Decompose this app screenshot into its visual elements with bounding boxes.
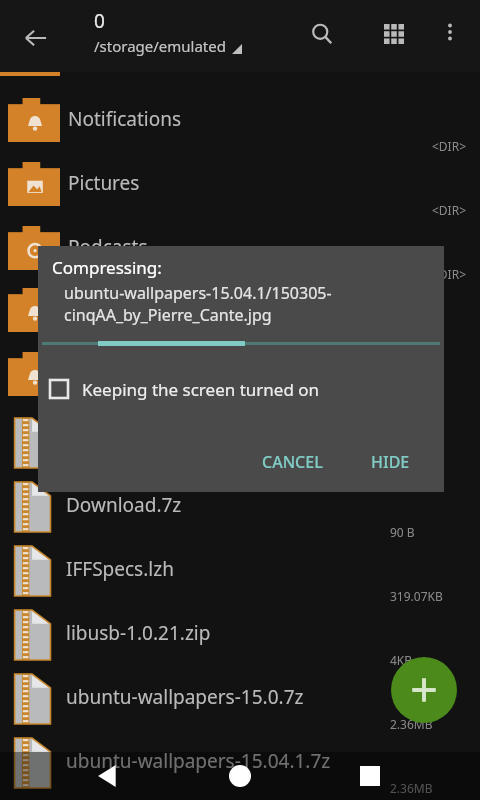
button[interactable]: Search xyxy=(298,10,346,58)
staticText: ubuntu-wallpapers-15.0.7z xyxy=(66,684,304,710)
staticText: Compressing: xyxy=(52,256,162,279)
button[interactable]: Add xyxy=(391,657,457,723)
button[interactable] xyxy=(8,352,60,396)
button[interactable]: Pictures xyxy=(0,160,480,224)
staticText: /storage/emulated xyxy=(94,36,226,56)
staticText: 319.07KB xyxy=(390,588,470,604)
staticText: IFFSpecs.lzh xyxy=(66,556,174,582)
staticText: CANCEL xyxy=(262,451,323,473)
button[interactable]: Home xyxy=(210,752,270,800)
staticText: 0 xyxy=(94,8,105,34)
staticText: Keeping the screen turned on xyxy=(82,378,320,401)
staticText: Podcasts xyxy=(68,234,148,260)
staticText: HIDE xyxy=(371,451,410,473)
button[interactable]: More options xyxy=(428,10,472,54)
button[interactable]: IFFSpecs.lzh xyxy=(0,544,480,608)
button[interactable]: Back xyxy=(12,14,60,62)
button[interactable]: Podcasts xyxy=(0,224,480,288)
button[interactable]: Back xyxy=(78,752,138,800)
staticText: Download.7z xyxy=(66,492,182,518)
button[interactable]: Download.7z xyxy=(0,480,480,544)
staticText: 90 B xyxy=(390,524,470,540)
staticText: 2.36MB xyxy=(390,780,470,796)
button[interactable]: Grid view xyxy=(370,10,418,58)
staticText: <DIR> xyxy=(432,266,467,282)
button[interactable] xyxy=(8,288,60,332)
staticText: 18 B xyxy=(390,460,470,476)
staticText: libusb-1.0.21.zip xyxy=(66,620,211,646)
staticText: <DIR> xyxy=(432,138,467,154)
button[interactable]: Notifications xyxy=(0,96,480,160)
staticText: 2.36MB xyxy=(390,716,470,732)
staticText: 4KB xyxy=(390,652,470,668)
button[interactable]: Aegisub.7z xyxy=(0,416,480,480)
staticText: Notifications xyxy=(68,106,182,132)
staticText: <DIR> xyxy=(432,202,467,218)
staticText: ubuntu-wallpapers-15.04.1.7z xyxy=(66,748,331,774)
button[interactable]: ubuntu-wallpapers-15.04.1.7z xyxy=(0,736,480,800)
button[interactable]: Recent apps xyxy=(340,752,400,800)
button[interactable]: CANCEL xyxy=(250,443,335,481)
staticText: ubuntu-wallpapers-15.04.1/150305-cinqAA_… xyxy=(64,282,436,326)
button[interactable]: libusb-1.0.21.zip xyxy=(0,608,480,672)
staticText: Pictures xyxy=(68,170,140,196)
button[interactable]: Keeping the screen turned on xyxy=(48,368,320,410)
button[interactable]: ubuntu-wallpapers-15.0.7z xyxy=(0,672,480,736)
button[interactable]: HIDE xyxy=(359,443,422,481)
